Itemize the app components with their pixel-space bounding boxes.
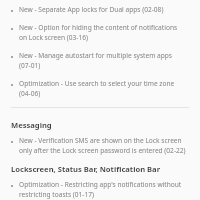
staticText: New - Separate App locks for Dual apps (…: [19, 5, 164, 14]
button[interactable]: Lockscreen, Status Bar, Notification Bar: [0, 158, 200, 177]
button[interactable]: New - Verification SMS are shown on the …: [0, 133, 200, 158]
staticText: Optimization - Restricting app's notific…: [19, 180, 186, 199]
staticText: New - Manage autostart for multiple syst…: [19, 51, 186, 70]
staticText: New - Option for hiding the content of n…: [19, 23, 186, 42]
staticText: New - Verification SMS are shown on the …: [19, 136, 186, 155]
button[interactable]: Optimization - Restricting app's notific…: [0, 177, 200, 200]
button[interactable]: Messaging: [0, 114, 200, 133]
staticText: Optimization - Use search to select your…: [19, 79, 186, 98]
button[interactable]: New - Separate App locks for Dual apps (…: [0, 2, 200, 17]
button[interactable]: Optimization - Use search to select your…: [0, 76, 200, 101]
button[interactable]: New - Option for hiding the content of n…: [0, 20, 200, 45]
button[interactable]: New - Manage autostart for multiple syst…: [0, 48, 200, 73]
